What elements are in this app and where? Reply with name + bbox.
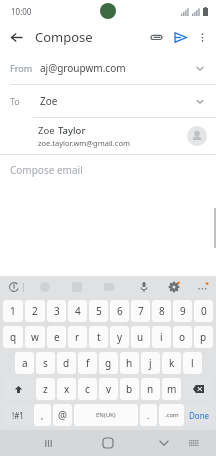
button[interactable]: g (99, 352, 118, 374)
button[interactable]: Stickers (68, 278, 86, 296)
button[interactable]: Expand To (192, 93, 208, 109)
button[interactable]: Voice input (135, 278, 153, 296)
button[interactable]: w (25, 326, 45, 348)
button[interactable]: l (183, 352, 202, 374)
staticText: u (137, 330, 144, 344)
staticText: From (10, 62, 33, 74)
button[interactable]: 3 (47, 300, 66, 322)
staticText: y (117, 330, 123, 344)
staticText: t (97, 330, 101, 344)
staticText: 2 (32, 304, 38, 318)
button[interactable]: More (193, 278, 211, 296)
staticText: .com (165, 411, 179, 419)
button[interactable]: !#1 (3, 404, 32, 426)
button[interactable]: 0 (194, 300, 213, 322)
button[interactable]: u (131, 326, 150, 348)
staticText: Zoe (40, 94, 58, 108)
staticText: 4 (75, 304, 81, 318)
staticText: 5 (96, 304, 102, 318)
button[interactable]: 1 (3, 300, 23, 322)
button[interactable]: Done (186, 404, 213, 426)
staticText: a (22, 356, 28, 370)
button[interactable]: .com (159, 404, 184, 426)
staticText: 6 (117, 304, 123, 318)
button[interactable]: d (57, 352, 76, 374)
button[interactable]: e (47, 326, 66, 348)
staticText: . (147, 409, 150, 421)
staticText: q (10, 330, 17, 344)
button[interactable]: Hide keyboard (154, 433, 174, 453)
staticText: w (31, 330, 39, 344)
button[interactable]: 6 (110, 300, 129, 322)
button[interactable]: 2 (25, 300, 45, 322)
button[interactable]: s (36, 352, 55, 374)
button[interactable] (183, 378, 213, 400)
button[interactable]: h (120, 352, 139, 374)
button[interactable]: Voice typing toggle (5, 278, 23, 296)
staticText: l (191, 356, 194, 370)
staticText: x (64, 382, 70, 396)
staticText: Compose email (10, 163, 83, 177)
button[interactable]: a (15, 352, 34, 374)
button[interactable]: Recents (38, 433, 58, 453)
button[interactable]: 9 (173, 300, 192, 322)
button[interactable]: j (141, 352, 160, 374)
button[interactable]: v (99, 378, 118, 400)
button[interactable]: 4 (68, 300, 87, 322)
button[interactable]: 7 (131, 300, 150, 322)
button[interactable]: r (68, 326, 87, 348)
button[interactable]: Attach file (144, 25, 168, 49)
button[interactable]: n (141, 378, 160, 400)
button[interactable]: Compose email (0, 155, 216, 276)
button[interactable]: Home (98, 433, 118, 453)
staticText: aj@groupwm.com (40, 61, 126, 75)
staticText: e (54, 330, 60, 344)
staticText: !#1 (12, 410, 24, 421)
button[interactable]: o (173, 326, 192, 348)
button[interactable]: To (0, 85, 216, 117)
button[interactable]: EN(UK) (74, 404, 138, 426)
button[interactable] (3, 378, 34, 400)
button[interactable]: Emoji (36, 278, 54, 296)
staticText: g (105, 356, 112, 370)
button[interactable]: Zoe (0, 117, 216, 154)
button[interactable]: More options (192, 27, 212, 47)
button[interactable]: Expand From (192, 60, 208, 76)
button[interactable]: c (78, 378, 97, 400)
button[interactable]: Back (5, 26, 27, 48)
staticText: EN(UK) (96, 411, 116, 419)
button[interactable]: @ (53, 404, 72, 426)
button[interactable]: z (36, 378, 55, 400)
button[interactable]: From (0, 52, 216, 84)
staticText: o (179, 330, 186, 344)
button[interactable]: k (162, 352, 181, 374)
staticText: 1 (10, 304, 16, 318)
staticText: d (63, 356, 70, 370)
button[interactable]: Settings (165, 278, 183, 296)
staticText: 3 (54, 304, 60, 318)
button[interactable]: . (140, 404, 157, 426)
button[interactable]: t (89, 326, 108, 348)
button[interactable]: f (78, 352, 97, 374)
button[interactable]: , (34, 404, 51, 426)
button[interactable]: m (162, 378, 181, 400)
button[interactable]: Send (168, 25, 192, 49)
staticText: r (75, 330, 80, 344)
staticText: To (10, 95, 20, 107)
button[interactable]: 8 (152, 300, 171, 322)
staticText: p (200, 330, 207, 344)
button[interactable]: q (3, 326, 23, 348)
button[interactable]: b (120, 378, 139, 400)
staticText: Taylor (58, 124, 86, 137)
button[interactable]: i (152, 326, 171, 348)
button[interactable]: Switch keyboard (184, 433, 204, 453)
staticText: 10:00 (11, 6, 32, 17)
button[interactable]: x (57, 378, 76, 400)
staticText: 7 (138, 304, 144, 318)
button[interactable]: p (194, 326, 213, 348)
staticText: 8 (159, 304, 165, 318)
button[interactable]: GIF (100, 278, 118, 296)
button[interactable]: 5 (89, 300, 108, 322)
staticText: Zoe (38, 124, 58, 137)
button[interactable]: y (110, 326, 129, 348)
